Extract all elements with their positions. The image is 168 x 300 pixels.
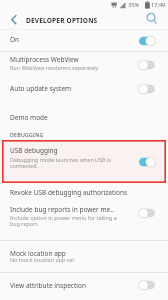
staticText: View attribute inspection (10, 281, 86, 290)
staticText: USB debugging (10, 146, 58, 155)
staticText: Multiprocess WebView (10, 55, 79, 64)
staticText: Debugging mode launches when USB is (10, 156, 111, 163)
staticText: 35% (128, 1, 140, 9)
staticText: bug report. (10, 220, 39, 227)
staticText: Include option in power menu for taking … (10, 214, 117, 221)
staticText: Auto update system (10, 84, 72, 93)
staticText: Demo mode (10, 113, 48, 122)
staticText: 17:49 (151, 1, 166, 9)
staticText: Run WebView renderers separately (10, 64, 99, 71)
staticText: Mock location app (10, 249, 66, 258)
staticText: connected. (10, 162, 38, 169)
staticText: DEVELOPER OPTIONS (26, 16, 98, 25)
staticText: DEBUGGING (10, 131, 44, 138)
staticText: No mock location app set (10, 256, 75, 263)
staticText: On (10, 35, 20, 44)
staticText: Include bug reports in power me.. (10, 205, 114, 214)
staticText: Revoke USB debugging authorizations (10, 188, 128, 197)
